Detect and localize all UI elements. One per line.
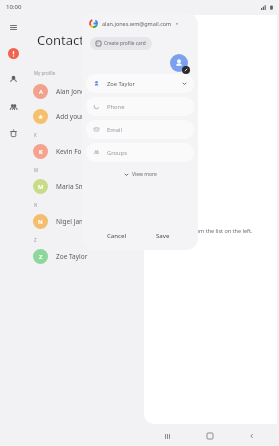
staticText: K [34,132,37,138]
button[interactable]: ★ [25,104,142,129]
button[interactable]: Z [25,244,142,269]
staticText: M [38,183,44,191]
button[interactable]: Change photo [170,54,190,74]
button[interactable]: Groups [4,98,22,116]
button[interactable]: Cancel [94,222,140,250]
staticText: alan.jones.wm@gmail.com [102,20,172,27]
staticText: Maria Smith [56,182,93,191]
staticText: N [34,202,38,208]
staticText: Zoe Taylor [56,252,88,261]
button[interactable]: A [25,79,142,104]
staticText: Email [107,126,122,134]
staticText: Z [39,253,43,261]
staticText: Alan Jones [56,87,88,96]
button[interactable]: M [25,174,142,199]
staticText: K [39,148,43,156]
staticText: Phone [107,103,125,111]
button[interactable]: Trash [4,124,22,142]
staticText: ★ [38,113,44,120]
staticText: Nigel Jameson [56,217,100,226]
button[interactable]: Home [202,428,218,444]
button[interactable]: Create profile card [90,37,152,50]
button[interactable]: Menu [4,18,22,36]
staticText: N [38,218,43,226]
button[interactable]: Save [140,222,186,250]
staticText: Contacts [37,31,91,49]
button[interactable]: Alerts [4,44,22,62]
button[interactable]: Contacts [4,70,22,88]
staticText: Groups [107,149,127,157]
button[interactable]: Email [86,120,194,139]
button[interactable]: Phone [86,97,194,116]
button[interactable]: alan.jones.wm@gmail.com [82,13,198,34]
staticText: M [34,167,39,173]
staticText: Zoe Taylor [107,80,135,88]
staticText: Save [156,232,170,240]
staticText: Cancel [107,232,127,240]
staticText: 10:00 [6,3,22,11]
button[interactable]: Groups [86,143,194,162]
button[interactable]: Back [244,428,260,444]
staticText: Z [34,237,37,243]
staticText: Create profile card [104,40,146,47]
staticText: Kevin Foley [56,147,91,156]
staticText: Add your favo… [56,112,104,121]
button[interactable]: N [25,209,142,234]
button[interactable]: Recents [159,428,175,444]
staticText: Select a contact from the list on the le… [150,227,253,234]
staticText: A [39,88,43,96]
button[interactable]: K [25,139,142,164]
button[interactable]: View more [82,166,198,182]
button[interactable]: Zoe Taylor [86,74,194,93]
staticText: My profile [34,70,56,76]
staticText: View more [132,171,157,178]
